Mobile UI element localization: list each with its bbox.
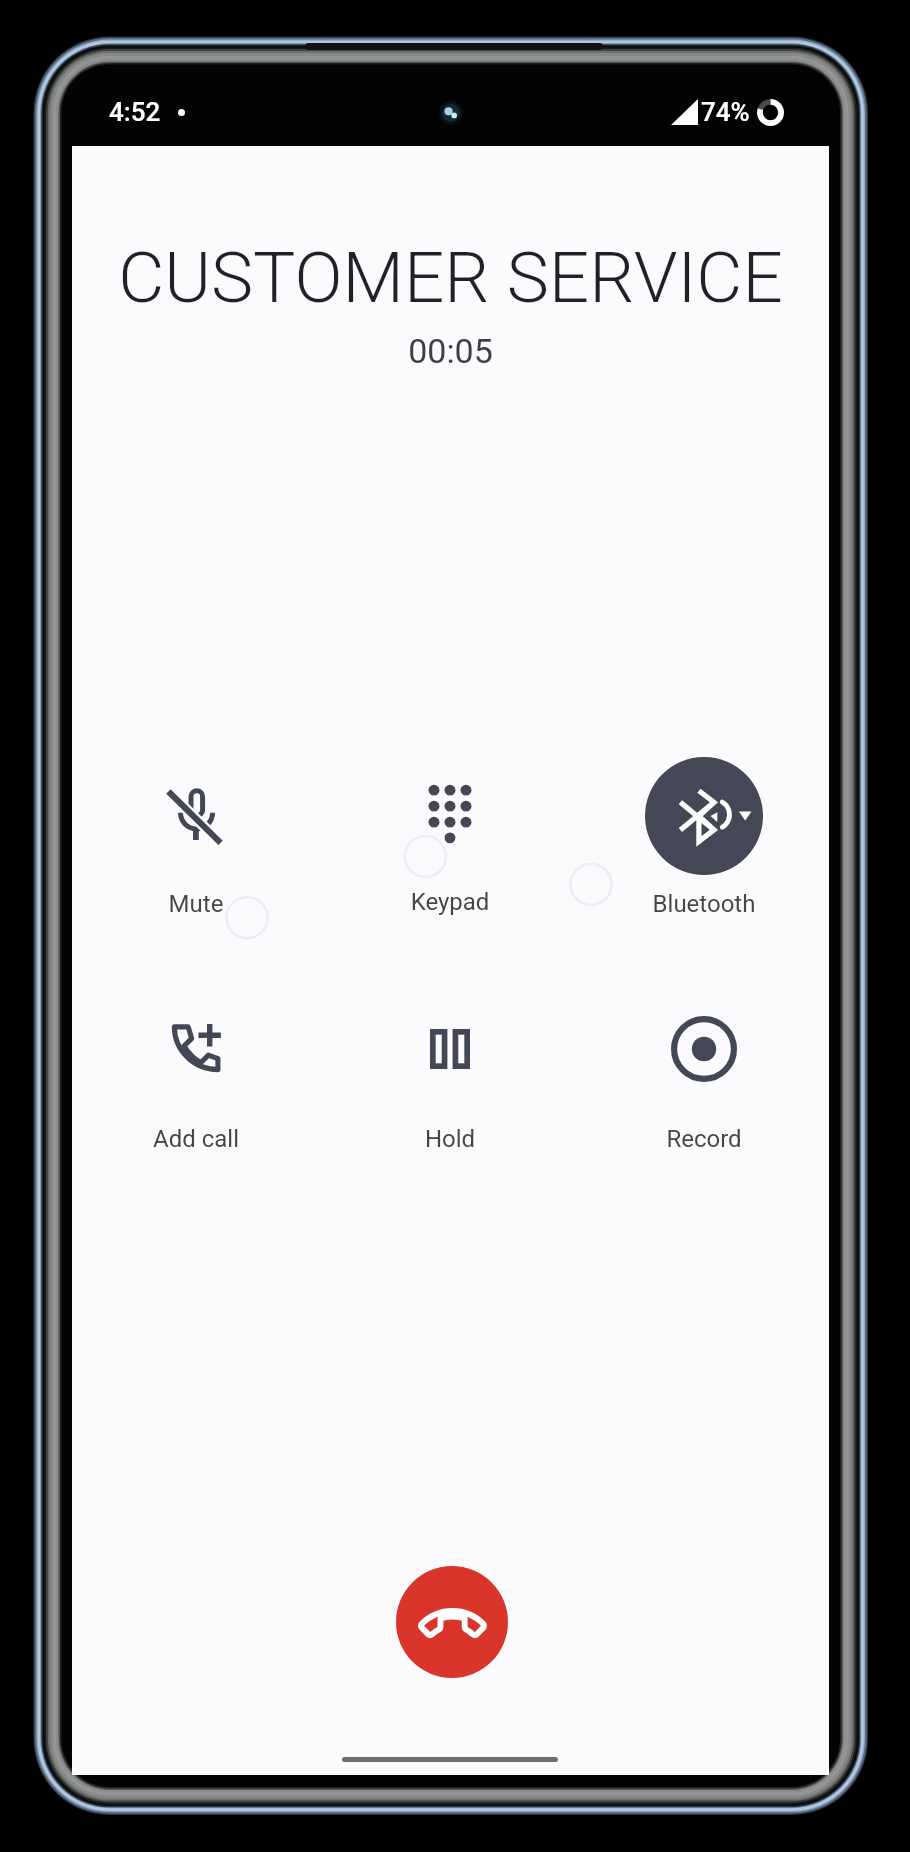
staticText: Hold — [323, 1125, 577, 1153]
staticText: Add call — [69, 1125, 323, 1153]
button[interactable]: Add call — [137, 989, 255, 1107]
staticText: Mute — [69, 890, 323, 918]
staticText: 00:05 — [72, 331, 829, 371]
staticText: Record — [577, 1125, 831, 1153]
staticText: CUSTOMER SERVICE — [72, 236, 829, 319]
button[interactable]: Keypad — [391, 755, 509, 873]
button[interactable]: End call — [396, 1566, 508, 1678]
staticText: 4:52 — [109, 97, 161, 127]
button[interactable]: Record — [645, 990, 763, 1108]
button[interactable]: Mute — [137, 757, 255, 875]
button[interactable]: Hold — [391, 990, 509, 1108]
staticText: 74% — [701, 97, 750, 127]
button[interactable]: Bluetooth — [645, 757, 763, 875]
staticText: Bluetooth — [577, 890, 831, 918]
staticText: Keypad — [323, 888, 577, 916]
